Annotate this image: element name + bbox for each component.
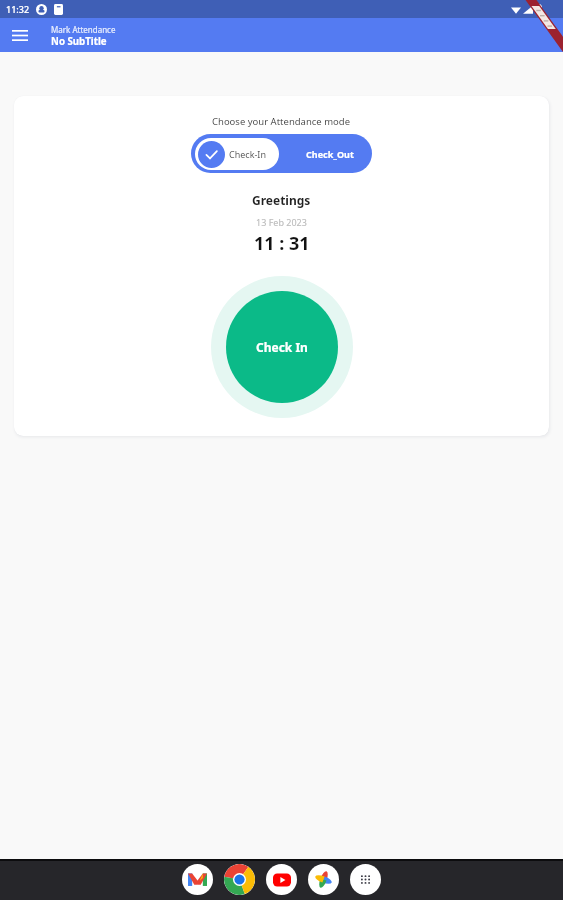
button[interactable]: All apps [350,864,381,895]
staticText: Mark Attendance [51,24,116,35]
staticText: 13 Feb 2023 [256,216,307,228]
staticText: Greetings [252,192,311,208]
staticText: Check_Out [306,148,354,160]
button[interactable]: Check_Out [287,134,372,173]
staticText: Choose your Attendance mode [212,115,351,128]
staticText: No SubTitle [51,35,107,48]
button[interactable]: Gmail [182,864,213,895]
button[interactable]: Open navigation menu [0,18,40,52]
staticText: Check-In [229,148,266,160]
button[interactable]: Check-In [195,138,279,170]
button[interactable]: Chrome [224,864,255,895]
button[interactable]: YouTube [266,864,297,895]
button[interactable]: Check In [226,291,338,403]
staticText: Check In [256,339,308,355]
staticText: 11:32 [6,3,30,15]
button[interactable]: Google Photos [308,864,339,895]
staticText: 11 : 31 [254,231,310,256]
